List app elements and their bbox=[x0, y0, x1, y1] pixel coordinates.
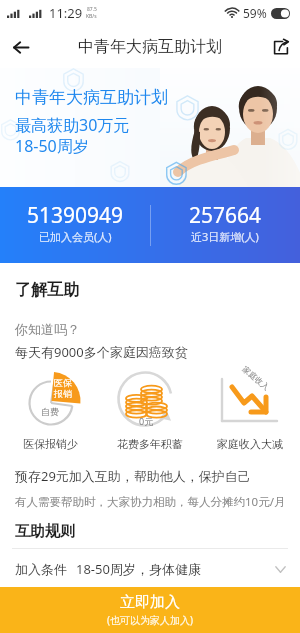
staticText: 11:29 bbox=[49, 4, 83, 22]
staticText: 257664 bbox=[189, 201, 262, 230]
staticText: 医保 bbox=[54, 377, 72, 388]
button[interactable]: 加入条件 bbox=[0, 551, 300, 587]
staticText: 已加入会员(人) bbox=[39, 229, 112, 244]
staticText: 你知道吗？ bbox=[15, 321, 80, 337]
staticText: 立即加入 bbox=[120, 593, 180, 612]
staticText: 家庭收入大减 bbox=[217, 437, 283, 451]
staticText: 0元 bbox=[139, 415, 154, 427]
staticText: KB/s bbox=[86, 13, 97, 20]
staticText: 有人需要帮助时，大家协力相助，每人分摊约10元/月 bbox=[15, 494, 286, 510]
staticText: 报销 bbox=[54, 388, 72, 399]
staticText: 互助规则 bbox=[15, 522, 75, 541]
staticText: 中青年大病互助计划 bbox=[15, 87, 168, 108]
staticText: 预存29元加入互助，帮助他人，保护自己 bbox=[15, 467, 251, 485]
button[interactable]: Back bbox=[0, 26, 42, 68]
button[interactable]: 立即加入 bbox=[0, 587, 300, 633]
staticText: (也可以为家人加入) bbox=[107, 613, 193, 627]
staticText: 18-50周岁，身体健康 bbox=[76, 560, 201, 578]
button[interactable]: Share bbox=[262, 26, 300, 68]
staticText: 中青年大病互助计划 bbox=[78, 37, 222, 57]
staticText: 自费 bbox=[41, 406, 59, 417]
staticText: 医保报销少 bbox=[23, 437, 78, 451]
staticText: 花费多年积蓄 bbox=[117, 437, 183, 451]
button[interactable]: 51390949 bbox=[0, 187, 150, 263]
staticText: 最高获助30万元 bbox=[15, 114, 130, 136]
staticText: 家庭收入 bbox=[240, 364, 271, 392]
staticText: 每天有9000多个家庭因癌致贫 bbox=[15, 343, 188, 361]
staticText: 18-50周岁 bbox=[15, 135, 89, 157]
staticText: 59% bbox=[243, 5, 267, 21]
staticText: 87.5 bbox=[87, 6, 97, 13]
button[interactable]: 257664 bbox=[150, 187, 300, 263]
staticText: 加入条件 bbox=[15, 561, 67, 577]
staticText: 近3日新增(人) bbox=[191, 229, 259, 244]
staticText: 51390949 bbox=[27, 201, 124, 230]
staticText: 了解互助 bbox=[15, 280, 79, 300]
